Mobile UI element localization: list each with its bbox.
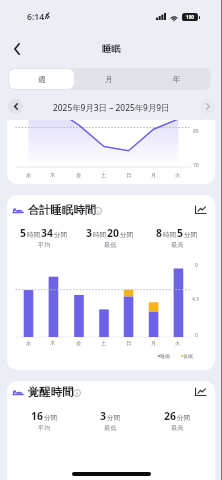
- staticText: 時間: [93, 231, 107, 239]
- staticText: 金: [76, 340, 82, 347]
- staticText: 平均: [38, 241, 51, 249]
- staticText: 土: [101, 172, 107, 179]
- staticText: 土: [101, 340, 107, 347]
- staticText: 34: [41, 226, 53, 240]
- staticText: 年: [173, 74, 181, 84]
- staticText: 70: [193, 162, 199, 169]
- staticText: 水: [26, 340, 32, 347]
- staticText: 覚醒時間: [28, 385, 74, 399]
- staticText: 20: [107, 226, 119, 240]
- button[interactable]: 週: [9, 69, 74, 89]
- staticText: 火: [175, 340, 181, 347]
- staticText: 合計睡眠時間: [28, 203, 96, 217]
- staticText: 睡眠: [160, 353, 170, 359]
- staticText: 分間: [54, 231, 68, 239]
- button[interactable]: 年: [144, 69, 210, 89]
- staticText: 分間: [120, 231, 134, 239]
- staticText: 2025年9月3日 – 2025年9月9日: [53, 102, 170, 113]
- staticText: 水: [26, 172, 32, 179]
- staticText: 0: [195, 332, 198, 339]
- staticText: 木: [50, 340, 56, 347]
- staticText: 仮眠: [183, 353, 193, 359]
- staticText: 分間: [107, 414, 121, 422]
- staticText: 火: [175, 172, 181, 179]
- staticText: 分間: [177, 414, 191, 422]
- staticText: 月: [105, 74, 113, 84]
- staticText: 週: [38, 74, 46, 84]
- staticText: 時間: [163, 231, 177, 239]
- staticText: 8: [156, 226, 162, 240]
- staticText: 6:14: [27, 11, 45, 23]
- staticText: 分間: [44, 414, 58, 422]
- staticText: 木: [50, 172, 56, 179]
- staticText: 平均: [38, 424, 51, 432]
- staticText: 26: [164, 409, 176, 423]
- staticText: 85: [193, 128, 199, 135]
- button[interactable]: Previous week: [8, 99, 23, 114]
- staticText: 最低: [104, 241, 117, 249]
- staticText: 9: [195, 262, 198, 269]
- staticText: 日: [126, 340, 132, 347]
- staticText: 最高: [171, 241, 184, 249]
- staticText: 月: [151, 340, 157, 347]
- staticText: 最低: [104, 424, 117, 432]
- button[interactable]: Back: [5, 36, 29, 61]
- staticText: 最高: [171, 424, 184, 432]
- button[interactable]: Next week: [200, 99, 215, 114]
- staticText: 100: [186, 14, 194, 20]
- button[interactable]: 月: [76, 69, 142, 89]
- staticText: 3: [100, 409, 106, 423]
- staticText: 時間: [27, 231, 41, 239]
- staticText: 日: [126, 172, 132, 179]
- staticText: 5: [20, 226, 26, 240]
- staticText: 5: [177, 226, 183, 240]
- button[interactable]: [7, 120, 215, 184]
- button[interactable]: Open chart: [192, 384, 208, 400]
- staticText: 4.5: [192, 296, 200, 303]
- staticText: 金: [76, 172, 82, 179]
- staticText: 3: [86, 226, 92, 240]
- staticText: 分間: [184, 231, 198, 239]
- staticText: 16: [31, 409, 43, 423]
- staticText: 月: [151, 172, 157, 179]
- staticText: 睡眠: [102, 43, 121, 55]
- button[interactable]: Open chart: [192, 202, 208, 218]
